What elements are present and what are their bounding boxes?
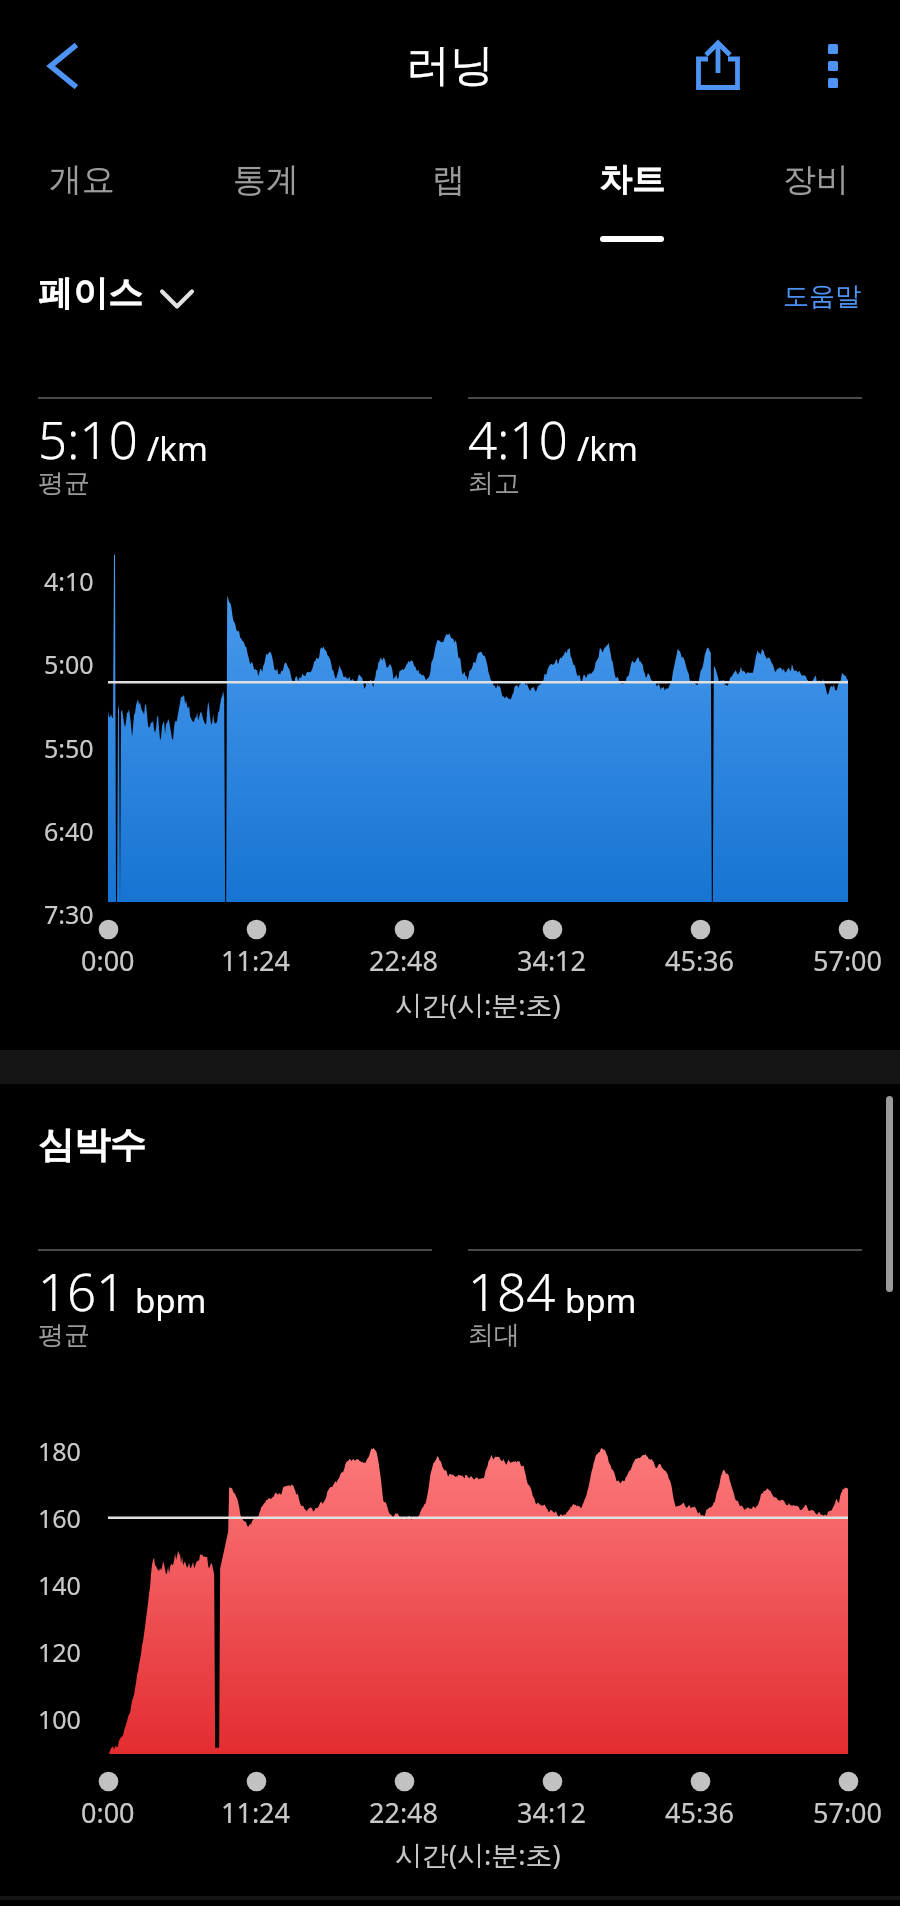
staticText: 34:12 <box>517 1794 587 1831</box>
staticText: 160 <box>38 1501 81 1535</box>
button[interactable]: 차트 <box>542 130 722 248</box>
staticText: 평균 <box>38 467 90 500</box>
staticText: 평균 <box>38 1319 90 1352</box>
staticText: 22:48 <box>369 942 439 979</box>
staticText: 차트 <box>599 159 665 201</box>
staticText: 랩 <box>432 159 465 201</box>
staticText: 5:10 <box>38 404 138 473</box>
staticText: 시간(시:분:초) <box>395 986 561 1023</box>
staticText: 시간(시:분:초) <box>395 1836 561 1873</box>
staticText: 57:00 <box>813 942 883 979</box>
button[interactable]: 페이스 <box>38 271 194 315</box>
staticText: 장비 <box>783 159 849 201</box>
button[interactable]: Back <box>31 34 95 98</box>
staticText: 개요 <box>49 159 115 201</box>
staticText: 4:10 <box>44 564 94 598</box>
staticText: 도움말 <box>783 280 861 313</box>
staticText: 5:00 <box>44 647 94 681</box>
button[interactable]: 개요 <box>0 130 172 248</box>
staticText: 180 <box>38 1434 81 1468</box>
button[interactable]: 도움말 <box>770 272 874 320</box>
button[interactable]: Share <box>685 32 751 98</box>
staticText: 184 <box>468 1256 556 1325</box>
staticText: 45:36 <box>665 942 735 979</box>
staticText: 0:00 <box>81 1794 135 1831</box>
staticText: 34:12 <box>517 942 587 979</box>
staticText: 최고 <box>468 467 520 500</box>
staticText: 161 <box>38 1256 126 1325</box>
button[interactable]: 통계 <box>176 130 356 248</box>
staticText: 120 <box>38 1635 81 1669</box>
button[interactable]: More options <box>800 33 866 99</box>
staticText: 통계 <box>233 159 299 201</box>
staticText: bpm <box>565 1278 637 1323</box>
staticText: 140 <box>38 1568 81 1602</box>
staticText: 최대 <box>468 1319 520 1352</box>
button[interactable]: 랩 <box>358 130 538 248</box>
staticText: 7:30 <box>44 897 94 931</box>
staticText: 11:24 <box>221 942 291 979</box>
staticText: /km <box>577 426 638 471</box>
staticText: 45:36 <box>665 1794 735 1831</box>
staticText: 11:24 <box>221 1794 291 1831</box>
staticText: 0:00 <box>81 942 135 979</box>
staticText: 러닝 <box>0 38 900 93</box>
staticText: 57:00 <box>813 1794 883 1831</box>
staticText: 5:50 <box>44 731 94 765</box>
staticText: 4:10 <box>468 404 568 473</box>
staticText: 페이스 <box>38 271 143 315</box>
staticText: bpm <box>135 1278 207 1323</box>
staticText: /km <box>147 426 208 471</box>
staticText: 100 <box>38 1702 81 1736</box>
staticText: 22:48 <box>369 1794 439 1831</box>
staticText: 6:40 <box>44 814 94 848</box>
staticText: 심박수 <box>38 1122 146 1167</box>
button[interactable]: 장비 <box>726 130 900 248</box>
